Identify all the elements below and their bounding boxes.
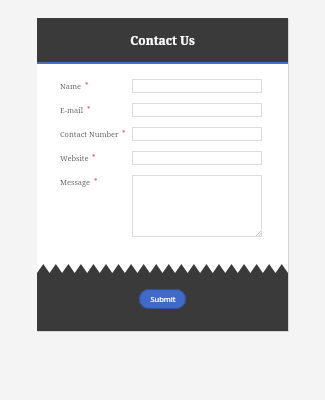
button[interactable]: Website [132, 151, 262, 165]
button[interactable]: Contact Number [132, 127, 262, 141]
staticText: E-mail [60, 105, 84, 115]
staticText: Contact Number [60, 129, 119, 139]
staticText: Submit [150, 294, 176, 304]
staticText: Contact Us [130, 32, 195, 48]
staticText: * [92, 153, 96, 163]
button[interactable]: E-mail [132, 103, 262, 117]
staticText: Website [60, 153, 89, 163]
staticText: * [85, 81, 89, 91]
staticText: Name [60, 81, 82, 91]
staticText: Message [60, 177, 91, 187]
staticText: * [87, 105, 91, 115]
staticText: * [94, 177, 98, 187]
button[interactable]: Submit [139, 289, 186, 309]
button[interactable]: Name [132, 79, 262, 93]
staticText: * [122, 129, 126, 139]
button[interactable]: Message [132, 175, 262, 237]
